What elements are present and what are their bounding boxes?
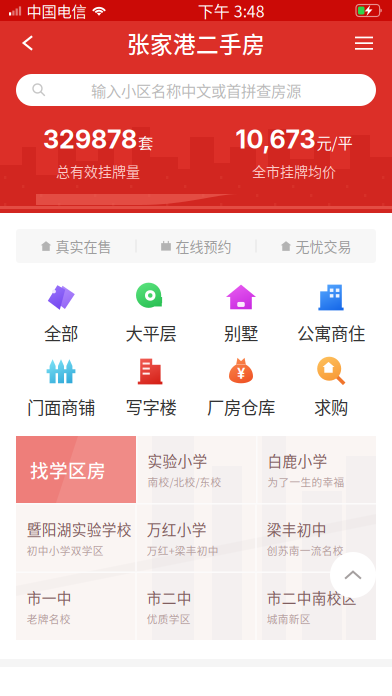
staticText: 张家港二手房 [127,27,265,59]
button[interactable]: 门面商铺 [16,358,106,418]
button[interactable]: 菜单 [342,21,386,65]
button[interactable]: 万红小学 [137,504,255,571]
staticText: 市二中南校区 [267,587,357,608]
button[interactable]: 市二中 [137,573,255,640]
button[interactable]: 大平层 [106,284,196,344]
staticText: 初中小学双学区 [27,542,104,558]
staticText: 套 [138,131,153,153]
staticText: 暨阳湖实验学校 [27,518,132,539]
button[interactable]: 别墅 [196,284,286,344]
button[interactable]: 白鹿小学 [257,436,376,503]
button[interactable]: ¥ [196,358,286,418]
button[interactable]: 返回 [6,21,50,65]
button[interactable]: 回到顶部 [330,552,376,598]
button[interactable]: 实验小学 [137,436,256,503]
staticText: 万红+梁丰初中 [147,542,219,558]
staticText: 写字楼 [125,394,176,419]
staticText: 329878 [43,124,137,155]
staticText: 10,673 [235,124,315,155]
staticText: 优质学区 [147,611,191,626]
staticText: 全市挂牌均价 [252,161,336,181]
staticText: 元/平 [316,131,352,153]
staticText: 中国电信 [26,0,86,22]
staticText: 市一中 [27,587,72,608]
button[interactable]: 全部 [16,284,106,344]
staticText: 城南新区 [267,611,311,626]
staticText: 创苏南一流名校 [267,542,344,558]
staticText: 求购 [314,394,348,419]
staticText: 梁丰初中 [267,518,327,539]
staticText: 门面商铺 [27,394,95,419]
staticText: 南校/北校/东校 [147,474,221,489]
staticText: 老牌名校 [27,611,71,626]
staticText: 实验小学 [147,450,207,471]
staticText: 下午 3:48 [198,0,265,22]
staticText: 大平层 [125,320,176,345]
button[interactable]: 梁丰初中 [257,504,375,571]
staticText: 为了一生的幸福 [267,474,344,489]
button[interactable]: 市二中南校区 [257,573,375,640]
staticText: 市二中 [147,587,192,608]
button[interactable]: 暨阳湖实验学校 [17,504,135,571]
staticText: 厂房仓库 [207,394,275,419]
button[interactable]: 求购 [286,358,376,418]
button[interactable]: 找学区房 [16,436,136,503]
button[interactable]: 公寓商住 [286,284,376,344]
staticText: 找学区房 [30,456,106,483]
staticText: 在线预约 [175,236,231,256]
staticText: 万红小学 [147,518,207,539]
staticText: 别墅 [224,320,258,345]
staticText: 真实在售 [55,236,111,256]
staticText: 输入小区名称中文或首拼查房源 [91,79,301,101]
staticText: 白鹿小学 [267,450,327,471]
staticText: 总有效挂牌量 [56,161,140,181]
button[interactable]: 写字楼 [106,358,196,418]
staticText: 全部 [44,320,78,345]
button[interactable]: 市一中 [17,573,135,640]
staticText: ¥ [237,365,245,382]
staticText: 无忧交易 [295,236,351,256]
staticText: 公寓商住 [297,320,365,345]
